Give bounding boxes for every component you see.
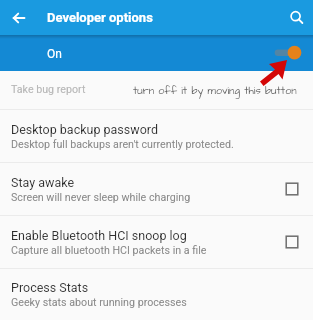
button[interactable]: Enable Bluetooth HCI snoop log xyxy=(0,216,313,268)
staticText: Desktop full backups aren't currently pr… xyxy=(11,138,234,151)
staticText: Developer options xyxy=(47,10,153,25)
button[interactable]: Back xyxy=(4,3,34,33)
staticText: Screen will never sleep while charging xyxy=(11,191,191,204)
staticText: Process Stats xyxy=(11,280,89,295)
staticText: On xyxy=(47,47,62,61)
button[interactable]: Stay awake xyxy=(285,182,299,196)
button[interactable]: Desktop backup password xyxy=(0,110,313,162)
button[interactable]: Toggle developer options xyxy=(276,44,302,62)
staticText: Desktop backup password xyxy=(11,122,158,137)
staticText: Stay awake xyxy=(11,175,75,190)
staticText: Capture all bluetooth HCI packets in a f… xyxy=(11,244,207,257)
button[interactable]: Enable Bluetooth HCI snoop log xyxy=(285,235,299,249)
button[interactable]: Take bug report xyxy=(0,71,313,109)
button[interactable]: Search xyxy=(283,4,311,32)
staticText: turn off it by moving this button xyxy=(133,83,297,98)
staticText: Geeky stats about running processes xyxy=(11,296,187,309)
button[interactable]: Stay awake xyxy=(0,163,313,215)
button[interactable]: On xyxy=(0,35,313,71)
button[interactable]: Process Stats xyxy=(0,269,313,320)
staticText: Enable Bluetooth HCI snoop log xyxy=(11,228,187,243)
staticText: Take bug report xyxy=(11,83,86,96)
